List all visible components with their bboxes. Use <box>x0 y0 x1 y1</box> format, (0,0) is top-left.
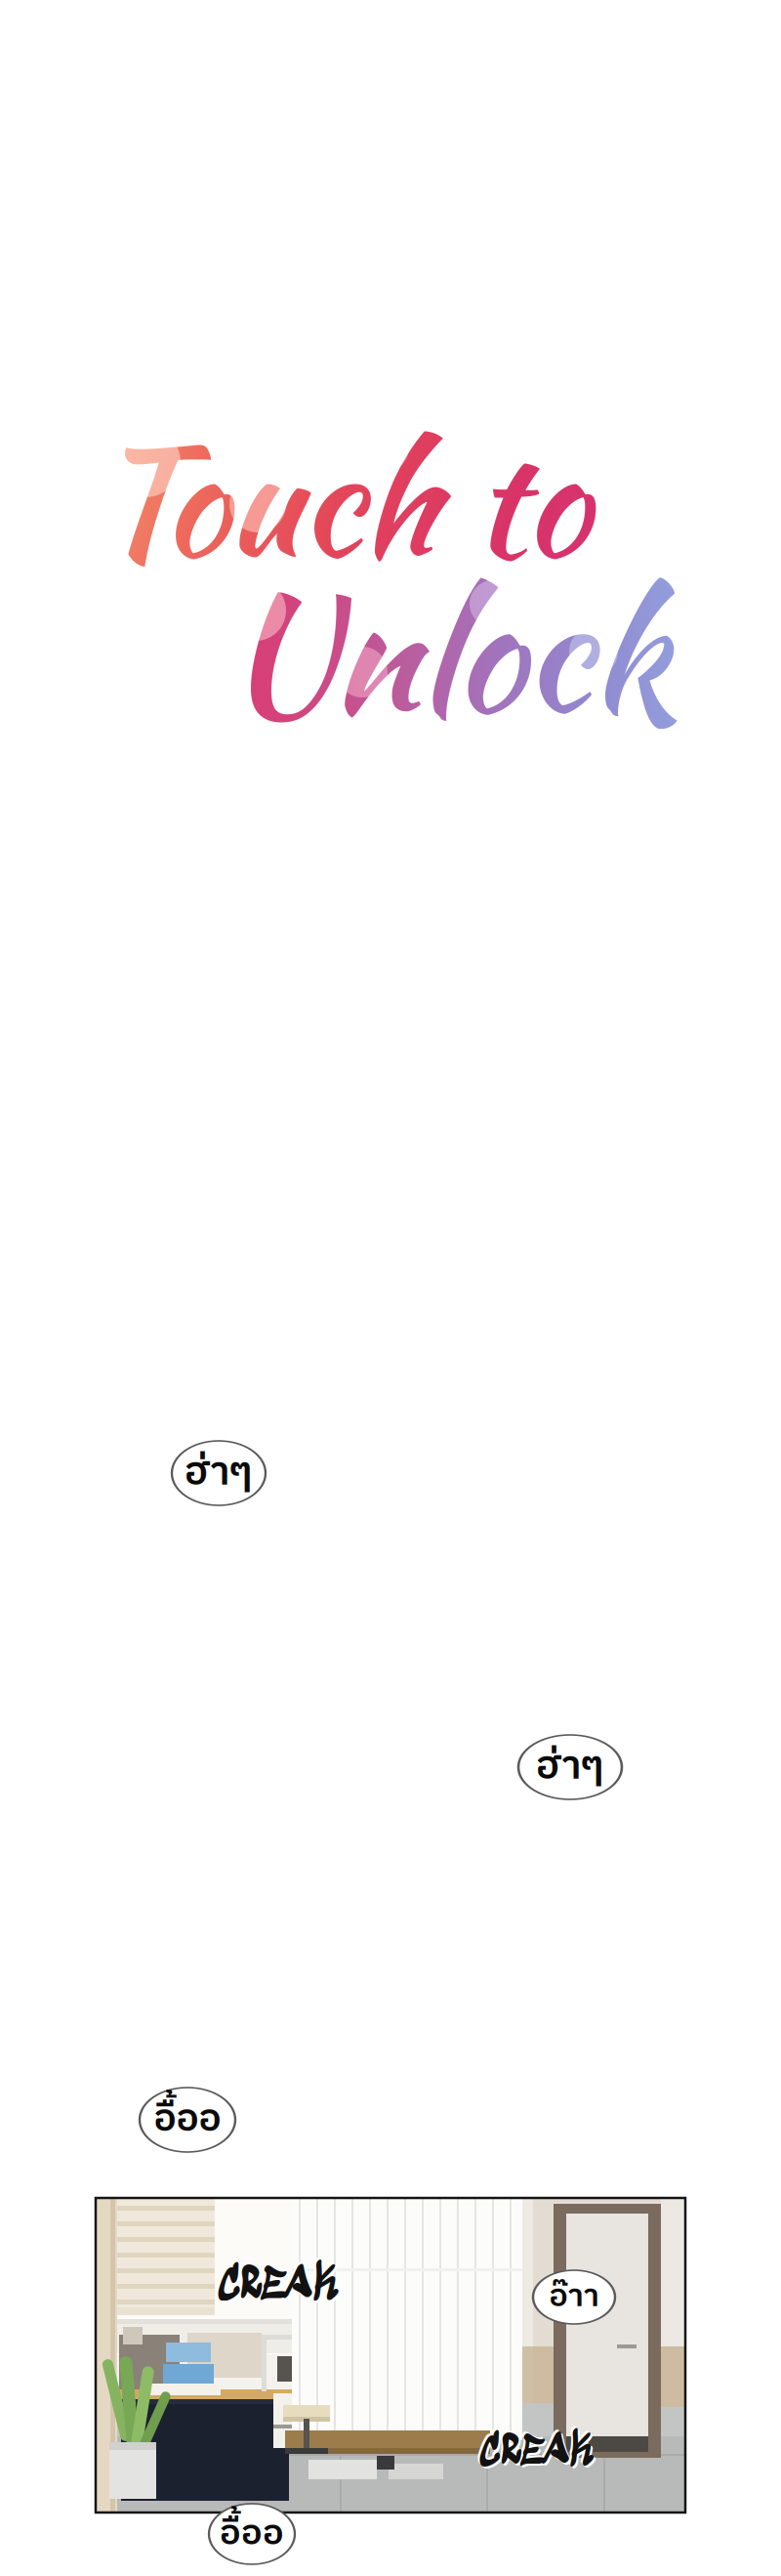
staticText: อื้ออ <box>220 2505 284 2563</box>
staticText: CREAK <box>480 2428 596 2481</box>
staticText: อ๊าา <box>549 2271 599 2323</box>
staticText: CREAK <box>478 2427 595 2479</box>
staticText: ฮ่าๆ <box>536 1735 604 1799</box>
staticText: อื้ออ <box>154 2089 221 2151</box>
staticText: CREAK <box>219 2260 342 2316</box>
staticText: CREAK <box>217 2259 340 2314</box>
staticText: CREAK <box>215 2257 338 2312</box>
staticText: CREAK <box>476 2425 593 2477</box>
staticText: ฮ่าๆ <box>185 1441 253 1505</box>
